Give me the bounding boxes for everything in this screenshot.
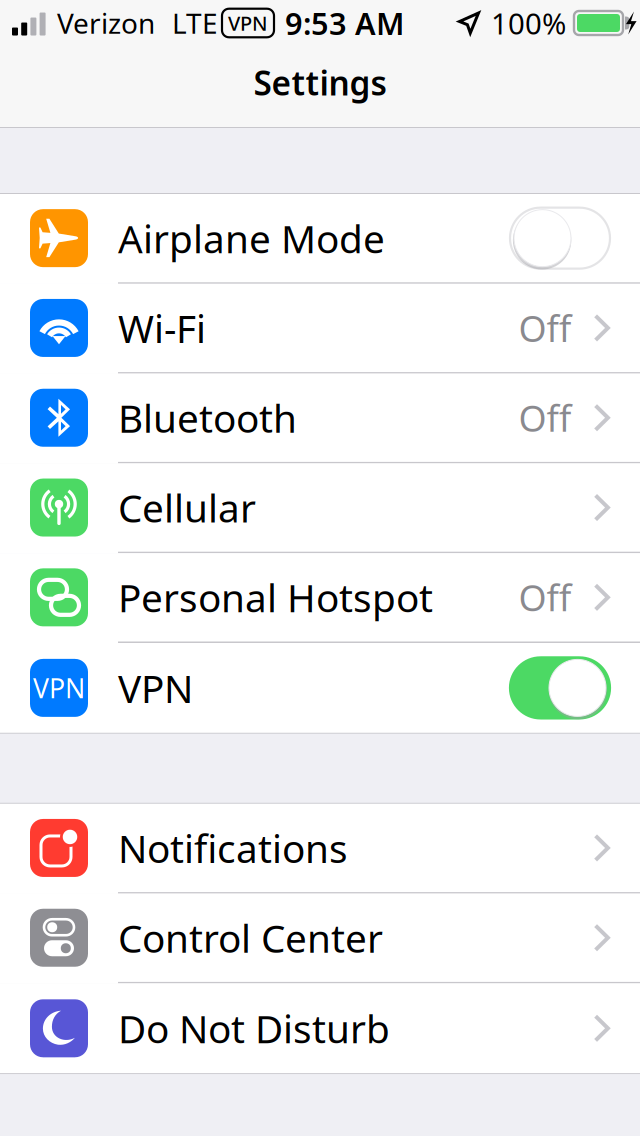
button[interactable]: VPN bbox=[0, 643, 640, 733]
button[interactable]: Personal Hotspot bbox=[0, 553, 640, 643]
staticText: VPN bbox=[33, 670, 85, 706]
button[interactable]: Airplane Mode bbox=[0, 194, 640, 284]
staticText: Control Center bbox=[118, 912, 383, 963]
staticText: LTE bbox=[172, 4, 218, 42]
staticText: Airplane Mode bbox=[118, 212, 385, 264]
staticText: VPN bbox=[118, 662, 193, 713]
button[interactable]: Wi-Fi bbox=[0, 284, 640, 374]
staticText: Off bbox=[518, 304, 571, 352]
staticText: Off bbox=[518, 573, 571, 621]
staticText: Notifications bbox=[118, 822, 348, 874]
staticText: Wi-Fi bbox=[118, 302, 206, 354]
staticText: Cellular bbox=[118, 482, 256, 533]
staticText: Off bbox=[518, 394, 571, 442]
button[interactable]: Notifications bbox=[0, 804, 640, 894]
button[interactable]: Cellular bbox=[0, 463, 640, 553]
button[interactable]: Bluetooth bbox=[0, 374, 640, 463]
staticText: Bluetooth bbox=[118, 392, 297, 443]
staticText: Settings bbox=[253, 60, 386, 105]
staticText: Do Not Disturb bbox=[118, 1003, 390, 1054]
staticText: VPN bbox=[228, 10, 268, 36]
staticText: 100% bbox=[491, 3, 566, 42]
staticText: 9:53 AM bbox=[285, 3, 404, 43]
button[interactable]: Do Not Disturb bbox=[0, 983, 640, 1073]
staticText: Personal Hotspot bbox=[118, 572, 433, 623]
staticText: Verizon bbox=[57, 4, 155, 42]
button[interactable]: Control Center bbox=[0, 894, 640, 983]
